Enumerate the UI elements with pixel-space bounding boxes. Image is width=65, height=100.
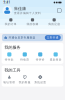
staticText: 我的收藏 xyxy=(26,22,38,26)
button[interactable]: 开通会员享专属权益 xyxy=(0,34,65,41)
staticText: 地址管理 xyxy=(3,81,15,84)
staticText: 9:41 xyxy=(3,1,10,4)
staticText: 退款售后 xyxy=(50,58,62,61)
button[interactable]: 系统设置 xyxy=(32,75,48,84)
button[interactable]: 退款售后 xyxy=(48,52,63,61)
staticText: 查看并编辑个人资料 xyxy=(14,12,41,15)
staticText: 开通会员享专属权益 xyxy=(9,36,36,39)
staticText: 我的足迹 xyxy=(48,22,60,26)
button[interactable]: 我的订单 xyxy=(0,18,22,26)
staticText: 我的服务 xyxy=(5,45,21,50)
staticText: 我的订单 xyxy=(5,22,17,26)
button[interactable]: 我的客服 xyxy=(17,75,32,84)
button[interactable]: 待评价 xyxy=(32,52,48,61)
button[interactable]: 待付款 xyxy=(2,52,17,61)
button[interactable]: 待收货 xyxy=(17,52,32,61)
button[interactable]: 我的足迹 xyxy=(43,18,65,26)
staticText: 系统设置 xyxy=(34,81,46,84)
button[interactable]: 地址管理 xyxy=(2,75,17,84)
staticText: 待评价 xyxy=(36,58,45,61)
staticText: 待付款 xyxy=(5,58,14,61)
staticText: 立即开通 xyxy=(47,36,59,39)
staticText: 待收货 xyxy=(20,58,29,61)
staticText: 我的客服 xyxy=(19,81,31,84)
button[interactable]: Settings xyxy=(56,7,62,14)
staticText: 我的工具 xyxy=(5,68,21,73)
button[interactable]: 我的收藏 xyxy=(22,18,43,26)
staticText: 朱佳康 xyxy=(14,6,26,11)
